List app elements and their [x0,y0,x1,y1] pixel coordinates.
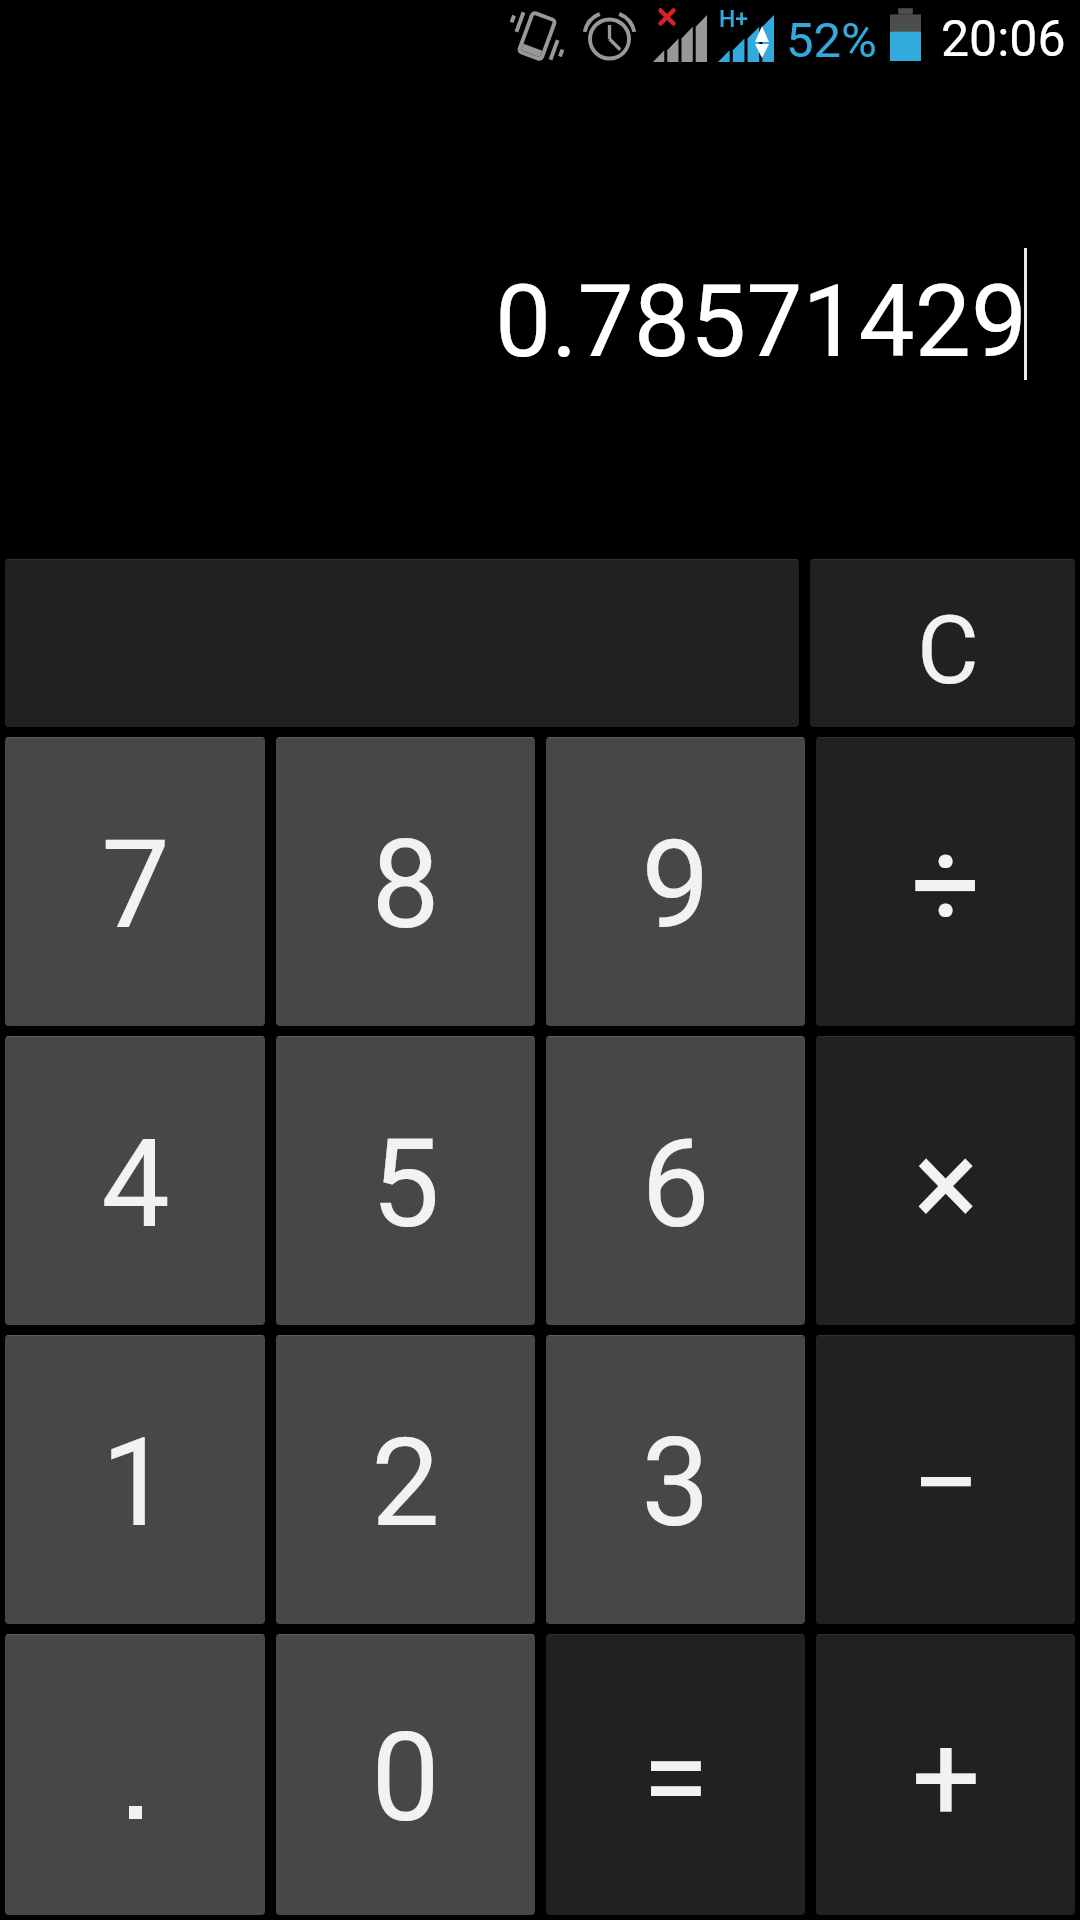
staticText: ÷ [911,814,981,957]
staticText: 0 [371,1707,440,1850]
button[interactable]: 2 [276,1335,535,1624]
staticText: 0.78571429 [495,263,1028,380]
button[interactable]: 3 [546,1335,805,1624]
staticText: 1 [101,1412,170,1555]
button[interactable]: Decimal point [5,1634,265,1915]
button[interactable]: Multiply [816,1036,1075,1325]
staticText: H+ [719,6,749,33]
staticText: + [911,1707,981,1850]
staticText: C [917,595,979,706]
button[interactable]: Add [816,1634,1075,1915]
button[interactable]: 9 [546,737,805,1026]
staticText: 9 [641,814,710,957]
staticText: 4 [101,1113,170,1256]
button[interactable]: Equals [546,1634,805,1915]
staticText: 2 [371,1412,440,1555]
button[interactable]: 8 [276,737,535,1026]
staticText: 7 [101,814,170,957]
button[interactable]: 5 [276,1036,535,1325]
staticText: = [642,1707,709,1850]
staticText: 5 [371,1113,440,1256]
staticText: 8 [371,814,440,957]
button[interactable]: 1 [5,1335,265,1624]
button[interactable]: Clear [810,559,1075,727]
button[interactable]: 6 [546,1036,805,1325]
staticText: 20:06 [941,10,1066,69]
staticText: 52% [786,12,877,69]
button[interactable]: 4 [5,1036,265,1325]
button[interactable]: 7 [5,737,265,1026]
staticText: × [913,1113,979,1256]
staticText: − [911,1412,981,1555]
staticText: 6 [641,1113,710,1256]
button[interactable]: Divide [816,737,1075,1026]
button[interactable]: 0 [276,1634,535,1915]
staticText: 3 [641,1412,710,1555]
button[interactable]: Subtract [816,1335,1075,1624]
